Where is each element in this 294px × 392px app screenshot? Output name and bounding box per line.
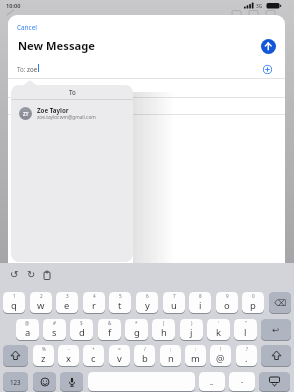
staticText: 5 [119, 293, 122, 299]
staticText: n [168, 352, 174, 365]
staticText: New Message [18, 38, 95, 53]
staticText: 0 [252, 293, 255, 299]
button[interactable]: ⌫ [269, 292, 291, 313]
button[interactable]: : [185, 345, 206, 366]
button[interactable]: 123 [3, 372, 28, 391]
staticText: zoe.taylor.wm@gmail.com [37, 114, 96, 121]
staticText: _ [210, 377, 214, 387]
button[interactable] [33, 372, 56, 391]
button[interactable] [60, 372, 83, 391]
staticText: + [92, 346, 95, 352]
button[interactable]: / [134, 345, 155, 366]
staticText: ↩ [272, 325, 280, 335]
staticText: y [145, 299, 150, 312]
staticText: - [68, 346, 70, 352]
button[interactable] [263, 65, 272, 74]
staticText: ⌫ [274, 298, 287, 308]
staticText: ↻ [27, 269, 36, 281]
staticText: . [245, 352, 248, 365]
staticText: r [92, 299, 96, 312]
button[interactable]: @ [16, 319, 39, 340]
button[interactable]: 7 [163, 292, 185, 313]
staticText: 9 [226, 293, 229, 299]
staticText: u [171, 299, 177, 312]
button[interactable]: - [229, 372, 255, 391]
staticText: w [37, 299, 45, 312]
button[interactable]: ) [180, 319, 203, 340]
button[interactable]: ( [152, 319, 175, 340]
staticText: 2 [40, 293, 43, 299]
button[interactable]: $ [70, 319, 93, 340]
staticText: # [53, 320, 56, 326]
button[interactable]: 8 [189, 292, 211, 313]
staticText: ↺ [10, 269, 19, 281]
staticText: 8 [199, 293, 202, 299]
button[interactable]: 5 [109, 292, 131, 313]
button[interactable]: * [125, 319, 148, 340]
button[interactable] [261, 39, 276, 54]
button[interactable] [261, 345, 291, 366]
staticText: i [199, 299, 202, 312]
staticText: ' [218, 320, 220, 326]
staticText: * [135, 320, 138, 326]
staticText: ( [163, 320, 165, 326]
staticText: 3 [66, 293, 69, 299]
button[interactable]: 6 [136, 292, 158, 313]
button[interactable]: ↩ [261, 319, 291, 340]
button[interactable]: - [58, 345, 79, 366]
staticText: v [117, 352, 122, 365]
button[interactable] [259, 372, 290, 391]
staticText: l [244, 326, 247, 339]
staticText: : [195, 346, 197, 352]
button[interactable] [3, 345, 28, 366]
staticText: @ [25, 320, 30, 326]
staticText: h [161, 326, 167, 339]
button[interactable] [88, 372, 195, 391]
button[interactable]: ? [236, 345, 257, 366]
staticText: c [91, 352, 96, 365]
button[interactable]: Cancel [17, 23, 37, 32]
staticText: z [41, 352, 46, 365]
button[interactable]: ↺ [8, 269, 20, 281]
staticText: & [108, 320, 112, 326]
button[interactable]: _ [199, 372, 225, 391]
button[interactable]: ' [207, 319, 230, 340]
button[interactable]: # [43, 319, 66, 340]
button[interactable] [41, 269, 53, 281]
button[interactable]: ZT [11, 100, 133, 125]
staticText: t [118, 299, 122, 312]
button[interactable]: % [33, 345, 54, 366]
staticText: To: [17, 65, 26, 73]
staticText: o [224, 299, 230, 312]
button[interactable]: ! [210, 345, 231, 366]
button[interactable]: 0 [242, 292, 264, 313]
staticText: 6 [146, 293, 149, 299]
staticText: k [216, 326, 222, 339]
button[interactable]: = [109, 345, 130, 366]
button[interactable]: ; [160, 345, 181, 366]
button[interactable]: " [234, 319, 257, 340]
staticText: To [69, 88, 76, 96]
staticText: p [250, 299, 256, 312]
button[interactable]: 1 [3, 292, 25, 313]
button[interactable]: & [98, 319, 121, 340]
button[interactable]: + [83, 345, 104, 366]
staticText: a [25, 326, 31, 339]
staticText: s [52, 326, 57, 339]
staticText: " [245, 320, 247, 326]
staticText: Cancel [17, 23, 37, 32]
staticText: m [191, 352, 200, 365]
staticText: q [11, 299, 17, 312]
button[interactable]: 2 [30, 292, 52, 313]
staticText: 123 [10, 378, 21, 386]
staticText: ? [246, 346, 248, 352]
button[interactable]: 3 [56, 292, 78, 313]
staticText: 7 [173, 293, 176, 299]
staticText: - [241, 377, 244, 387]
staticText: ; [170, 346, 172, 352]
staticText: b [142, 352, 148, 365]
button[interactable]: 9 [216, 292, 238, 313]
staticText: 1 [13, 293, 16, 299]
button[interactable]: 4 [83, 292, 105, 313]
button[interactable]: ↻ [25, 269, 37, 281]
